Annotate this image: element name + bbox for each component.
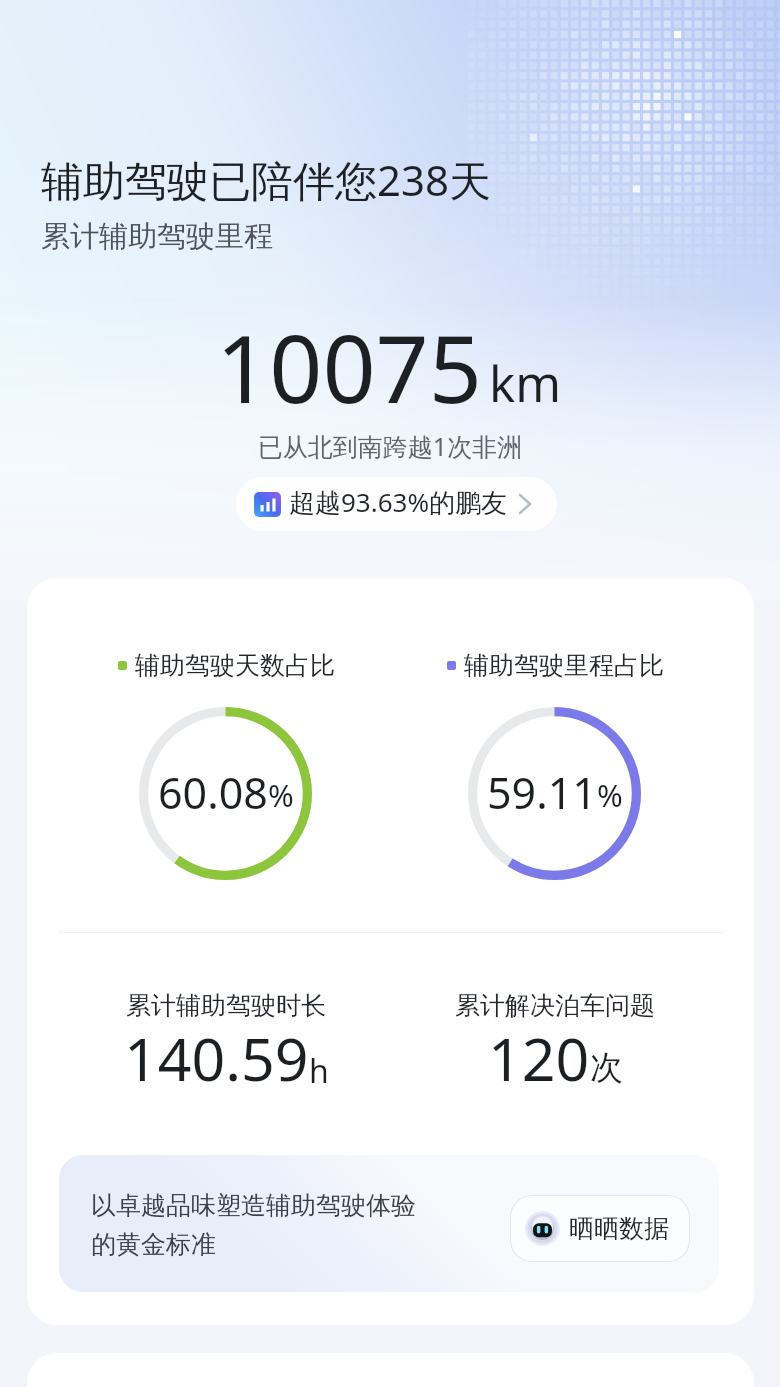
staticText: 累计辅助驾驶里程 [41, 218, 273, 255]
staticText: 10075 [216, 304, 482, 431]
staticText: 辅助驾驶里程占比 [464, 650, 664, 681]
staticText: 的黄金标准 [91, 1229, 216, 1260]
button[interactable]: Share data [511, 1196, 689, 1261]
staticText: h [309, 1049, 329, 1093]
other: More [517, 493, 535, 515]
staticText: % [268, 774, 294, 816]
staticText: km [489, 350, 561, 417]
staticText: 59.11 [487, 763, 597, 822]
staticText: 晒晒数据 [569, 1213, 669, 1244]
staticText: 以卓越品味塑造辅助驾驶体验 [91, 1190, 416, 1221]
staticText: 次 [590, 1047, 623, 1089]
staticText: 累计解决泊车问题 [455, 990, 655, 1021]
staticText: 140.59 [124, 1018, 309, 1098]
staticText: 60.08 [158, 763, 268, 822]
staticText: % [597, 774, 623, 816]
button[interactable]: 超越93.63%的鹏友 [236, 477, 557, 531]
staticText: 120 [488, 1018, 590, 1098]
staticText: 超越93.63%的鹏友 [289, 484, 508, 520]
staticText: 累计辅助驾驶时长 [126, 990, 326, 1021]
staticText: 辅助驾驶已陪伴您238天 [41, 151, 492, 208]
staticText: 已从北到南跨越1次非洲 [0, 429, 780, 463]
other: Share data [525, 1211, 560, 1246]
staticText: 辅助驾驶天数占比 [135, 650, 335, 681]
